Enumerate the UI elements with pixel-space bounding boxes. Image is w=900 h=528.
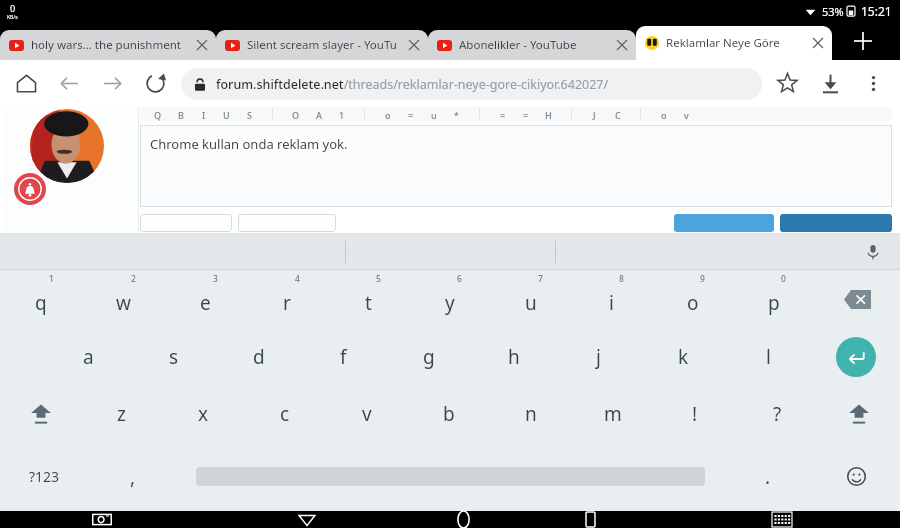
button[interactable]: 7 — [490, 270, 571, 328]
button[interactable]: ? — [736, 385, 818, 442]
button[interactable]: More options — [852, 62, 895, 105]
button[interactable]: Close tab — [611, 34, 633, 56]
button[interactable]: Close tab — [191, 34, 213, 56]
staticText: f — [340, 344, 347, 370]
button[interactable]: 8 — [571, 270, 652, 328]
staticText: ! — [692, 401, 698, 427]
staticText: KB/s — [7, 14, 18, 21]
staticText: w — [116, 290, 131, 316]
staticText: x — [198, 401, 209, 427]
button[interactable]: forum.shiftdelete.net/threads/reklamlar-… — [181, 68, 762, 100]
button[interactable]: 2 — [82, 270, 164, 328]
staticText: J — [593, 109, 596, 121]
button[interactable]: z — [81, 385, 162, 442]
button[interactable]: Back — [204, 511, 409, 528]
button[interactable]: Recents — [517, 511, 663, 528]
button[interactable]: Bookmark — [766, 62, 809, 105]
button[interactable]: Shift — [0, 385, 81, 442]
button[interactable]: 0 — [733, 270, 814, 328]
button[interactable]: Abonelikler - YouTube — [428, 30, 636, 60]
button[interactable]: l — [726, 328, 811, 385]
button[interactable]: 6 — [409, 270, 490, 328]
staticText: k — [678, 344, 689, 370]
staticText: 1 — [339, 109, 345, 121]
button[interactable]: Home — [409, 511, 517, 528]
button[interactable]: Submit — [780, 214, 892, 232]
staticText: , — [130, 464, 136, 490]
staticText: = — [500, 109, 506, 121]
staticText: * — [454, 109, 459, 121]
staticText: o — [687, 290, 699, 316]
button[interactable]: Enter — [836, 337, 876, 377]
staticText: 7 — [538, 273, 543, 285]
staticText: U — [223, 109, 230, 121]
button[interactable]: Space — [177, 442, 724, 511]
button[interactable]: a — [45, 328, 131, 385]
staticText: j — [596, 344, 601, 370]
button[interactable]: Emoji — [812, 442, 900, 511]
button[interactable]: Back — [48, 62, 91, 105]
button[interactable]: Reklamlar Neye Göre Çıkıyor — [636, 26, 832, 60]
button[interactable]: Reload — [134, 62, 177, 105]
button[interactable]: , — [89, 442, 177, 511]
button[interactable]: Download — [809, 62, 852, 105]
button[interactable]: h — [471, 328, 556, 385]
button[interactable]: Silent scream slayer - YouTu — [216, 30, 428, 60]
button[interactable]: ?123 — [0, 442, 89, 511]
button[interactable]: s — [131, 328, 216, 385]
staticText: o — [385, 109, 391, 121]
button[interactable]: g — [386, 328, 471, 385]
button[interactable]: 1 — [0, 270, 82, 328]
staticText: o — [661, 109, 667, 121]
staticText: r — [283, 290, 291, 316]
staticText: h — [508, 344, 520, 370]
button[interactable]: Forward — [91, 62, 134, 105]
button[interactable]: Screenshot — [0, 511, 204, 528]
button[interactable]: Home — [5, 62, 48, 105]
button[interactable]: Notifications — [14, 173, 46, 205]
button[interactable]: Backspace — [814, 270, 900, 328]
staticText: O — [292, 109, 300, 121]
button[interactable]: Hide keyboard — [663, 511, 900, 528]
staticText: C — [615, 109, 621, 121]
staticText: B — [178, 109, 184, 121]
button[interactable]: New tab — [832, 22, 894, 60]
button[interactable]: 5 — [328, 270, 409, 328]
button[interactable]: Submit — [674, 214, 774, 232]
button[interactable]: Chrome kullan onda reklam yok. — [140, 125, 892, 207]
staticText: 1 — [49, 273, 54, 285]
button[interactable]: 4 — [246, 270, 328, 328]
button[interactable]: v — [326, 385, 408, 442]
button[interactable]: Close tab — [807, 32, 829, 54]
staticText: ?123 — [29, 467, 60, 486]
button[interactable]: d — [216, 328, 301, 385]
button[interactable]: k — [641, 328, 726, 385]
button[interactable]: f — [301, 328, 386, 385]
button[interactable]: Shift — [818, 385, 900, 442]
button[interactable]: Voice input — [858, 237, 888, 267]
staticText: u — [431, 109, 437, 121]
staticText: = — [408, 109, 414, 121]
button[interactable]: j — [556, 328, 641, 385]
staticText: y — [445, 290, 455, 316]
staticText: 4 — [295, 273, 300, 285]
button[interactable]: n — [490, 385, 572, 442]
staticText: forum.shiftdelete.net/threads/reklamlar-… — [216, 76, 609, 93]
button[interactable]: m — [572, 385, 654, 442]
button[interactable]: Attach — [140, 214, 232, 232]
staticText: b — [443, 401, 455, 427]
button[interactable]: 9 — [652, 270, 733, 328]
button[interactable]: . — [724, 442, 812, 511]
button[interactable]: x — [162, 385, 244, 442]
button[interactable]: 3 — [164, 270, 246, 328]
button[interactable]: holy wars... the punishment — [0, 30, 216, 60]
button[interactable]: Attach — [238, 214, 336, 232]
staticText: p — [768, 290, 780, 316]
button[interactable]: c — [244, 385, 326, 442]
button[interactable]: Close tab — [403, 34, 425, 56]
button[interactable]: b — [408, 385, 490, 442]
staticText: Abonelikler - YouTube — [459, 37, 611, 53]
staticText: g — [423, 344, 435, 370]
button[interactable]: ! — [654, 385, 736, 442]
button[interactable]: Avatar — [30, 109, 104, 183]
